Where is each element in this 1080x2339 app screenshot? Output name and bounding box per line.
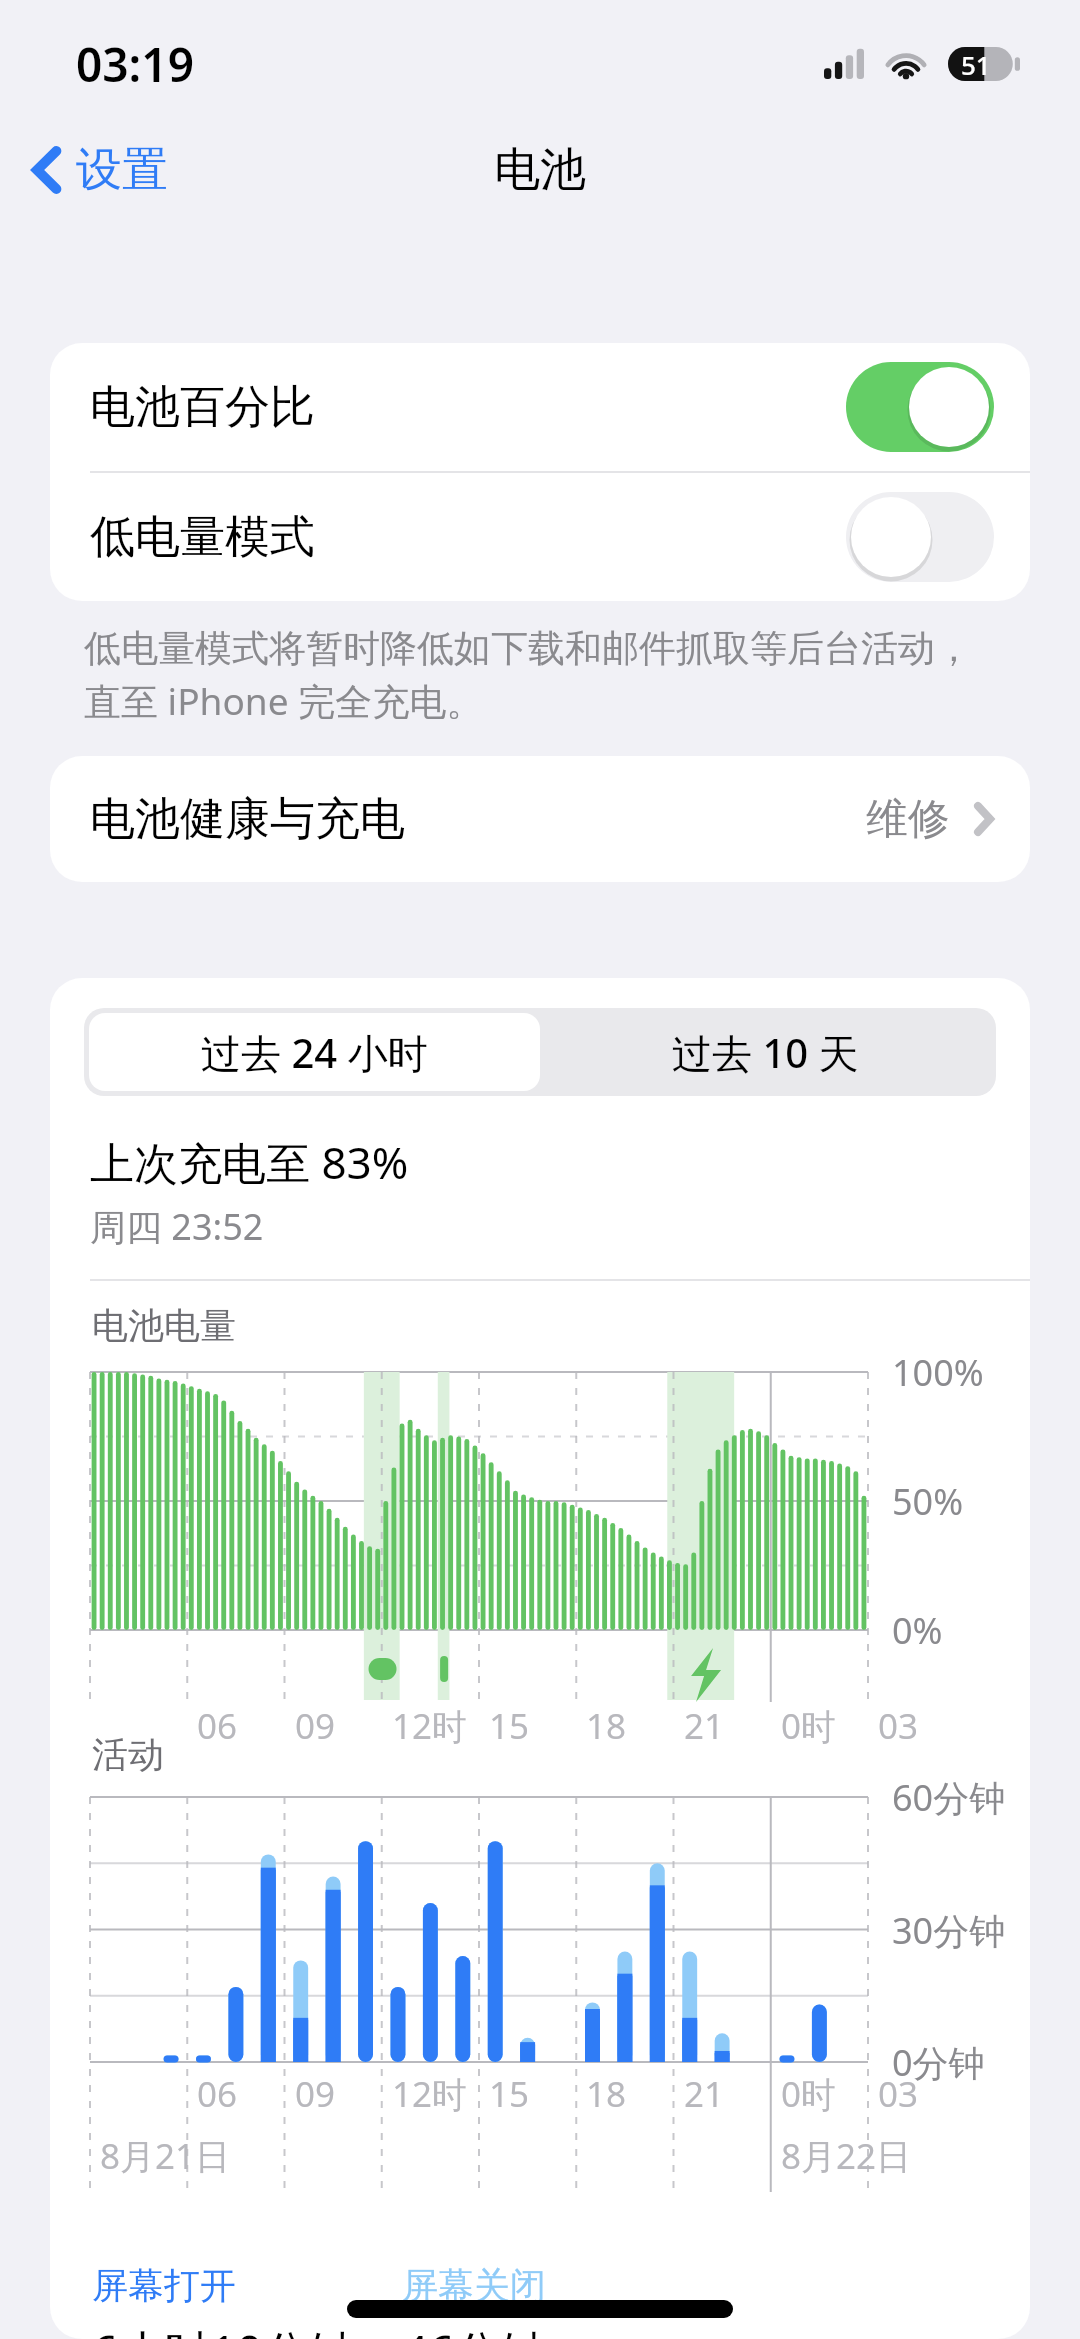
- staticText: 50%: [892, 1477, 1030, 1526]
- staticText: 09: [295, 1702, 336, 1750]
- button[interactable]: Enabled: [846, 362, 994, 452]
- button[interactable]: 过去 24 小时: [89, 1013, 540, 1091]
- staticText: 设置: [76, 141, 168, 199]
- staticText: 6小时10分钟: [92, 2320, 355, 2339]
- staticText: 活动: [92, 1732, 164, 1777]
- staticText: 21: [684, 2070, 725, 2118]
- staticText: 18: [586, 2070, 627, 2118]
- staticText: 18: [586, 1702, 627, 1750]
- staticText: 0%: [892, 1606, 1030, 1655]
- button[interactable]: 低电量模式: [50, 473, 1030, 601]
- staticText: 30分钟: [892, 1906, 1030, 1955]
- staticText: 15: [489, 2070, 530, 2118]
- staticText: 0时: [781, 2070, 837, 2118]
- staticText: 过去 10 天: [672, 1025, 859, 1080]
- staticText: 屏幕打开: [92, 2263, 236, 2308]
- staticText: 8月21日: [100, 2132, 231, 2180]
- staticText: 12时: [392, 2070, 468, 2118]
- staticText: 60分钟: [892, 1773, 1030, 1822]
- button[interactable]: 设置: [24, 131, 178, 209]
- staticText: 46分钟: [402, 2320, 547, 2339]
- staticText: 09: [295, 2070, 336, 2118]
- staticText: 06: [197, 1702, 238, 1750]
- button[interactable]: 电池健康与充电: [50, 756, 1030, 882]
- staticText: 电池百分比: [90, 379, 315, 436]
- staticText: 0分钟: [892, 2038, 1030, 2087]
- staticText: 电池: [494, 141, 586, 199]
- staticText: 低电量模式将暂时降低如下载和邮件抓取等后台活动，直至 iPhone 完全充电。: [84, 625, 996, 726]
- staticText: 电池健康与充电: [90, 791, 405, 848]
- staticText: 12时: [392, 1702, 468, 1750]
- button[interactable]: 过去 10 天: [540, 1013, 991, 1091]
- staticText: 03: [878, 2070, 919, 2118]
- staticText: 06: [197, 2070, 238, 2118]
- staticText: 15: [489, 1702, 530, 1750]
- staticText: 低电量模式: [90, 509, 315, 566]
- button[interactable]: Disabled: [846, 492, 994, 582]
- staticText: 100%: [892, 1348, 1030, 1397]
- staticText: 周四 23:52: [90, 1202, 264, 1251]
- staticText: 51: [961, 47, 991, 81]
- staticText: 过去 24 小时: [201, 1025, 428, 1080]
- button[interactable]: 电池百分比: [50, 343, 1030, 471]
- staticText: 03:19: [76, 33, 194, 96]
- staticText: 上次充电至 83%: [90, 1132, 409, 1192]
- staticText: 屏幕关闭: [402, 2263, 546, 2308]
- staticText: 03: [878, 1702, 919, 1750]
- staticText: 8月22日: [781, 2132, 912, 2180]
- staticText: 电池电量: [92, 1303, 236, 1348]
- staticText: 0时: [781, 1702, 837, 1750]
- staticText: 维修: [866, 793, 950, 846]
- staticText: 21: [684, 1702, 725, 1750]
